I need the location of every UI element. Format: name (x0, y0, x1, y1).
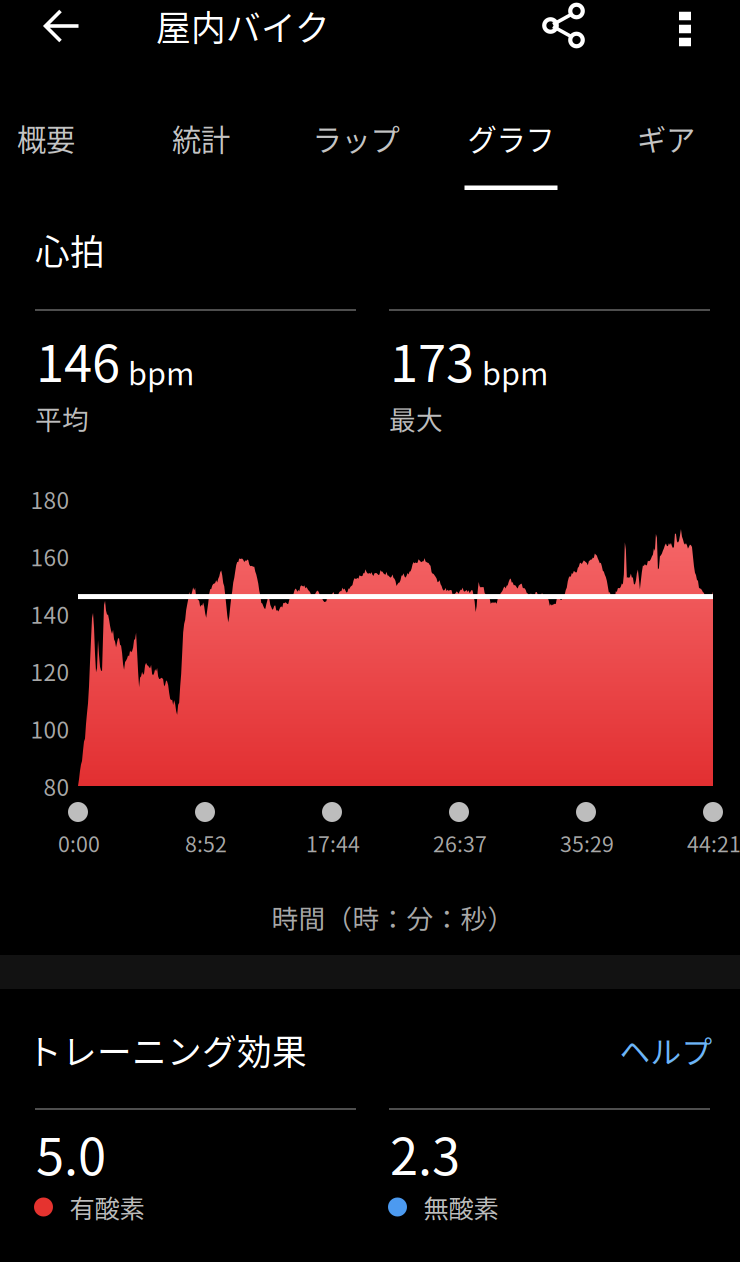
staticText: 146 (36, 323, 120, 397)
staticText: 26:37 (433, 828, 487, 858)
staticText: 173 (390, 323, 474, 397)
staticText: 平均 (35, 399, 89, 437)
button[interactable]: ヘルプ (606, 1018, 726, 1082)
staticText: 120 (30, 655, 69, 688)
staticText: 44:21 (687, 828, 740, 858)
staticText: 有酸素 (69, 1189, 144, 1225)
staticText: 概要 (17, 117, 75, 159)
staticText: 0:00 (58, 828, 100, 858)
button[interactable]: 統計 (123, 90, 278, 190)
staticText: ギア (637, 117, 695, 159)
staticText: 時間（時：分：秒） (271, 898, 514, 936)
staticText: 統計 (172, 117, 230, 159)
staticText: 140 (30, 597, 69, 630)
staticText: 17:44 (306, 828, 360, 858)
staticText: 8:52 (185, 828, 227, 858)
staticText: 2.3 (390, 1116, 460, 1190)
staticText: 5.0 (36, 1116, 106, 1190)
button[interactable]: Share (524, 0, 604, 63)
staticText: トレーニング効果 (27, 1025, 307, 1075)
button[interactable]: グラフ (433, 90, 588, 190)
button[interactable]: 概要 (0, 90, 123, 190)
button[interactable]: More options (649, 0, 721, 67)
staticText: 100 (30, 712, 69, 745)
staticText: 心拍 (35, 225, 105, 275)
staticText: bpm (128, 350, 194, 394)
staticText: 180 (30, 483, 69, 515)
staticText: グラフ (467, 117, 554, 159)
staticText: 160 (30, 540, 69, 573)
button[interactable]: ラップ (278, 90, 433, 190)
button[interactable]: Back (20, 0, 104, 64)
staticText: 屋内バイク (156, 1, 330, 51)
staticText: 最大 (389, 399, 443, 437)
button[interactable]: ギア (588, 90, 740, 190)
staticText: 無酸素 (423, 1189, 498, 1225)
staticText: 80 (43, 770, 69, 802)
staticText: ヘルプ (619, 1028, 712, 1072)
staticText: ラップ (312, 117, 399, 159)
staticText: 35:29 (560, 828, 614, 858)
staticText: bpm (482, 350, 548, 394)
